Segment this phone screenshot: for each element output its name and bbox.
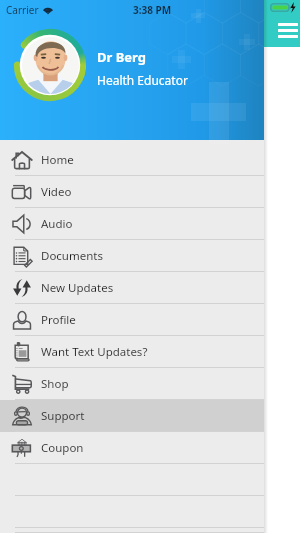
- button[interactable]: Home: [0, 144, 264, 176]
- button[interactable]: Video: [0, 176, 264, 208]
- staticText: New Updates: [41, 280, 114, 296]
- button[interactable]: Profile: [0, 304, 264, 336]
- staticText: Dr Berg: [97, 48, 147, 66]
- staticText: Profile: [41, 312, 76, 328]
- staticText: Want Text Updates?: [41, 344, 148, 360]
- staticText: Carrier: [6, 3, 39, 17]
- staticText: Documents: [41, 248, 103, 264]
- button[interactable]: Shop: [0, 368, 264, 400]
- button[interactable]: Coupon: [0, 432, 264, 464]
- staticText: Support: [41, 408, 85, 424]
- button[interactable]: Open menu: [278, 23, 298, 38]
- button[interactable]: Audio: [0, 208, 264, 240]
- staticText: Home: [41, 152, 74, 168]
- button[interactable]: Support: [0, 400, 264, 432]
- button[interactable]: New Updates: [0, 272, 264, 304]
- staticText: Audio: [41, 216, 73, 232]
- staticText: 3:38 PM: [133, 3, 172, 17]
- staticText: Coupon: [41, 440, 84, 456]
- button[interactable]: Documents: [0, 240, 264, 272]
- staticText: Health Educator: [97, 72, 188, 88]
- button[interactable]: Want Text Updates?: [0, 336, 264, 368]
- staticText: Shop: [41, 376, 69, 392]
- staticText: Video: [41, 184, 72, 200]
